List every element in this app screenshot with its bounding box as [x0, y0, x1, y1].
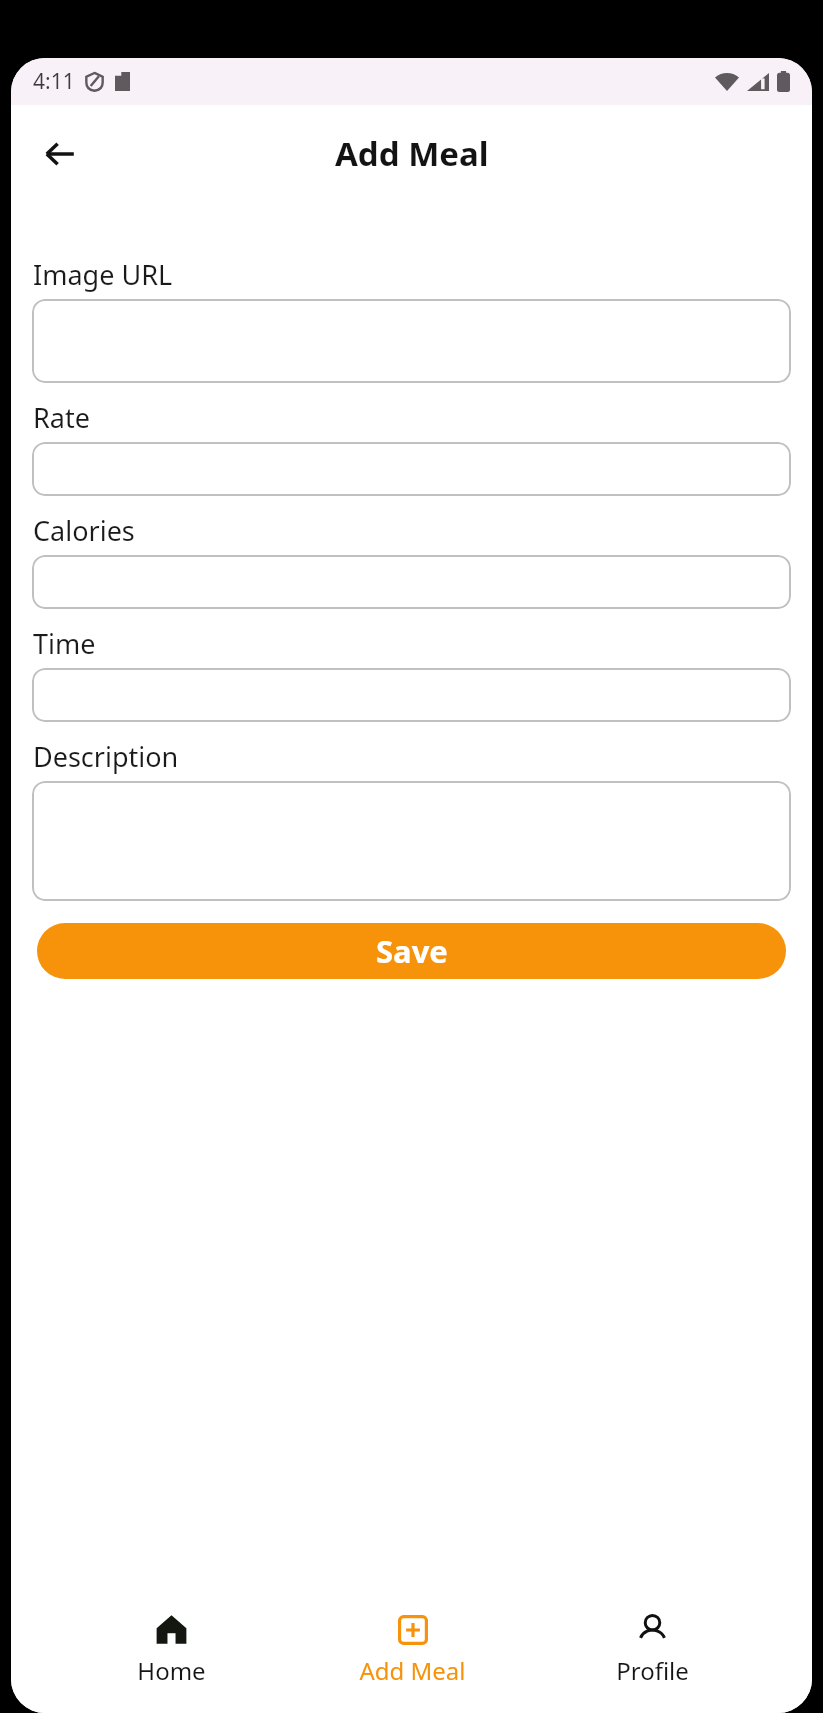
staticText: Calories — [33, 512, 135, 549]
staticText: Save — [376, 930, 448, 972]
staticText: Time — [33, 625, 96, 662]
button[interactable] — [32, 299, 791, 383]
staticText: Add Meal — [335, 131, 489, 176]
staticText: Home — [137, 1654, 206, 1687]
button[interactable] — [32, 668, 791, 722]
staticText: Rate — [33, 399, 90, 436]
button[interactable]: Add Meal — [332, 1613, 492, 1687]
staticText: 4:11 — [33, 67, 75, 96]
staticText: Add Meal — [359, 1654, 466, 1687]
button[interactable]: Profile — [572, 1613, 732, 1687]
button[interactable]: Save — [37, 923, 786, 979]
button[interactable]: Back — [34, 128, 86, 180]
button[interactable] — [32, 442, 791, 496]
staticText: Description — [33, 738, 179, 775]
staticText: Image URL — [33, 256, 173, 293]
button[interactable] — [32, 555, 791, 609]
button[interactable]: Home — [91, 1613, 251, 1687]
button[interactable] — [32, 781, 791, 901]
staticText: Profile — [616, 1654, 689, 1687]
